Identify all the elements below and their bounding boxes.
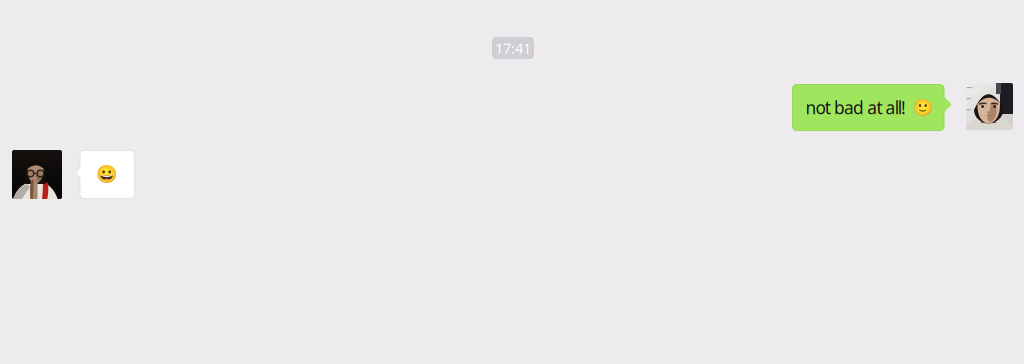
button[interactable]: Contact profile photo (12, 150, 62, 199)
staticText: 17:41 (495, 38, 531, 58)
button[interactable]: 😀 (75, 150, 134, 198)
button[interactable]: Your profile photo (966, 83, 1013, 130)
button[interactable]: not bad at all! (792, 84, 950, 130)
staticText: 🙂 (913, 98, 933, 117)
staticText: 😀 (96, 165, 118, 184)
staticText: not bad at all! (805, 96, 906, 119)
